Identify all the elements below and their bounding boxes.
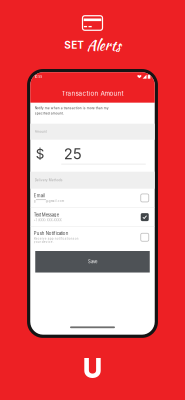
staticText: Email (34, 193, 45, 198)
staticText: Save (88, 259, 97, 264)
staticText: Transaction Amount (61, 90, 123, 97)
staticText: $ (36, 146, 45, 162)
staticText: Push Notification (34, 231, 69, 236)
staticText: 10:55 (34, 75, 42, 79)
staticText: 25 (64, 145, 82, 163)
button[interactable]: Push Notification (30, 227, 155, 247)
staticText: g**********@gmail.com (34, 199, 64, 203)
staticText: specified amount. (35, 111, 64, 115)
button[interactable]: Text Message (30, 208, 155, 227)
button[interactable]: Save (35, 251, 150, 272)
staticText: +1 (XXX) XXX-XXXX (34, 218, 62, 222)
staticText: Text Message (34, 212, 59, 217)
staticText: Receive app notifications on your device… (34, 237, 79, 244)
staticText: Alerts (87, 34, 121, 56)
button[interactable]: Email (30, 189, 155, 207)
staticText: Amount (35, 130, 47, 134)
staticText: SET (64, 39, 84, 51)
staticText: Delivery Methods (35, 178, 63, 182)
staticText: Notify me when a transaction is more tha… (35, 106, 109, 110)
